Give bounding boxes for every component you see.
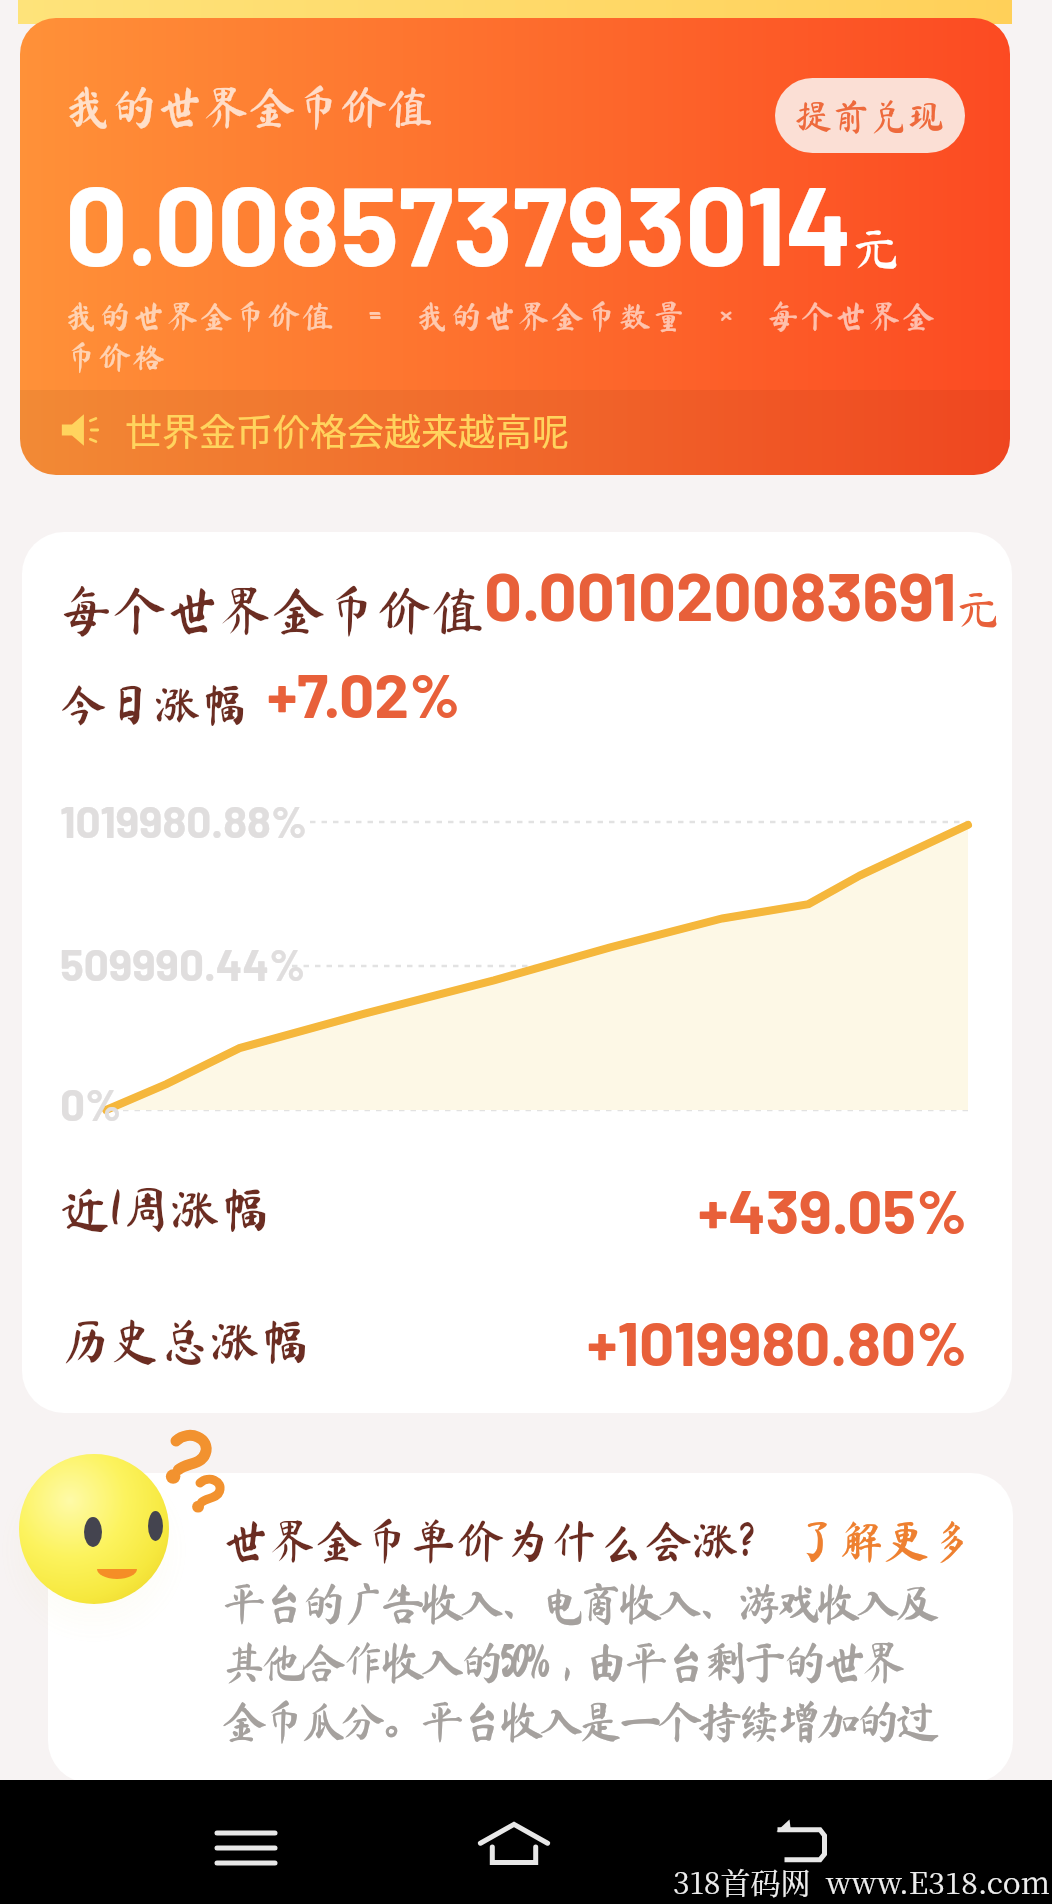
staticText: 今日涨幅 bbox=[60, 681, 267, 728]
staticText: 平台的广告收入、电商收入、游戏收入及 其他合作收入的50%，由平台剩于的世界 金… bbox=[222, 1580, 935, 1743]
staticText: +7.02% bbox=[267, 656, 461, 730]
staticText: 318首码网 www.E318.com bbox=[673, 1859, 1050, 1902]
staticText: 我的世界金币价值 = 我的世界金币数量 × 每个世界金 币价格 bbox=[65, 300, 1010, 373]
staticText: 了解更多 bbox=[794, 1518, 975, 1563]
other: Announcement bbox=[60, 407, 106, 453]
staticText: 1019980.88% bbox=[60, 794, 308, 847]
staticText: 我的世界金币价值 bbox=[65, 84, 433, 130]
staticText: 元 bbox=[957, 588, 968, 630]
button[interactable]: 我的世界金币价值 bbox=[20, 18, 1010, 475]
staticText: 世界金币单价为什么会涨? bbox=[222, 1517, 754, 1564]
button[interactable]: Announcement bbox=[20, 390, 1010, 475]
button[interactable]: 提前兑现 bbox=[775, 78, 965, 153]
staticText: 每个世界金币价值 bbox=[60, 583, 484, 636]
staticText: 0.008573793014 bbox=[65, 156, 853, 288]
staticText: 509990.44% bbox=[60, 937, 306, 990]
button[interactable]: 历史总涨幅 bbox=[60, 1304, 968, 1378]
staticText: 0% bbox=[60, 1077, 122, 1130]
staticText: 提前兑现 bbox=[795, 97, 945, 134]
button[interactable]: Recent apps bbox=[196, 1798, 296, 1898]
staticText: 世界金币价格会越来越高呢 bbox=[125, 403, 569, 457]
button[interactable]: Home bbox=[464, 1794, 564, 1894]
staticText: 历史总涨幅 bbox=[60, 1316, 310, 1366]
button[interactable]: 世界金币单价为什么会涨? bbox=[48, 1473, 1013, 1783]
staticText: 近1周涨幅 bbox=[60, 1184, 271, 1234]
button[interactable]: Back bbox=[751, 1794, 851, 1894]
staticText: 0.001020083691 bbox=[484, 554, 957, 634]
staticText: 元 bbox=[853, 226, 899, 272]
staticText: +439.05% bbox=[698, 1172, 968, 1246]
staticText: +1019980.80% bbox=[587, 1304, 968, 1378]
button[interactable]: 近1周涨幅 bbox=[60, 1172, 968, 1246]
